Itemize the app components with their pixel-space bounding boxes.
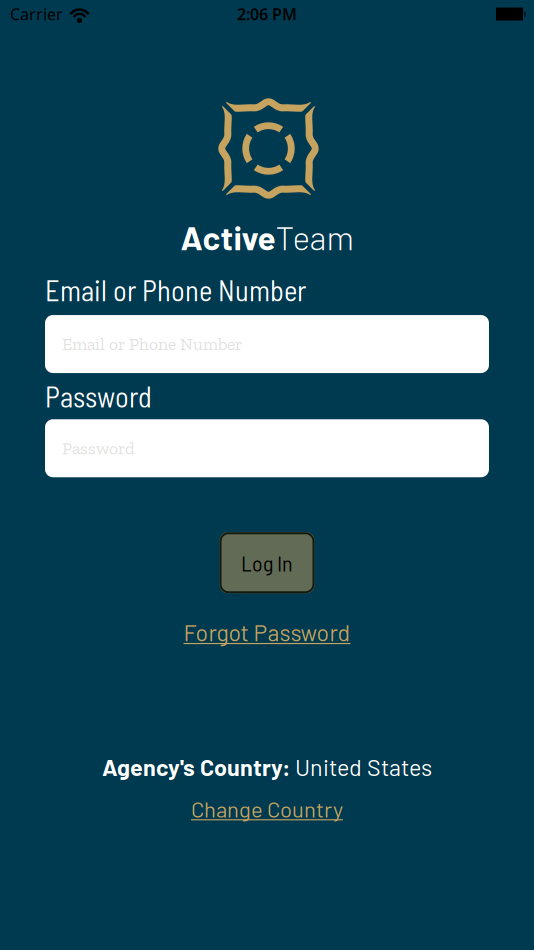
staticText: Agency's Country: [102, 753, 295, 781]
button[interactable]: Email or Phone Number [45, 315, 489, 373]
staticText: Active [180, 217, 275, 257]
staticText: Password [45, 379, 152, 413]
staticText: Carrier [10, 3, 63, 25]
button[interactable]: Change Country [191, 796, 343, 822]
staticText: United States [295, 753, 432, 781]
staticText: Password [62, 438, 135, 459]
staticText: Email or Phone Number [62, 333, 242, 354]
staticText: 2:06 PM [237, 3, 297, 25]
staticText: Forgot Password [183, 618, 350, 646]
staticText: Email or Phone Number [45, 273, 306, 307]
button[interactable]: Log In [219, 532, 314, 593]
staticText: Change Country [191, 796, 343, 822]
button[interactable]: Password [45, 419, 489, 477]
button[interactable]: Forgot Password [183, 618, 350, 646]
staticText: Team [275, 217, 353, 257]
staticText: Log In [241, 549, 293, 576]
